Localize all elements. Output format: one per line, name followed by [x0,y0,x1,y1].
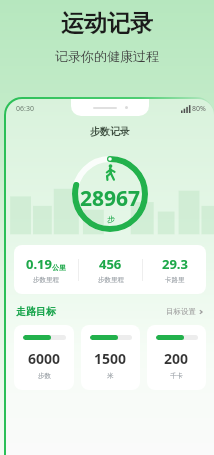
staticText: 06:30 [16,104,34,114]
staticText: 运动记录 [61,9,153,38]
button[interactable]: 目标设置 [166,307,204,316]
staticText: 0.19 [26,255,52,273]
staticText: 步数 [38,372,51,380]
staticText: 米 [107,372,114,380]
staticText: 200 [164,349,189,368]
staticText: 80% [192,104,206,114]
button[interactable]: 29.3 [143,251,206,288]
staticText: 步数里程 [33,276,59,284]
staticText: 公里 [52,263,66,272]
staticText: 456 [99,255,122,273]
button[interactable]: 1500 [81,325,140,390]
button[interactable]: 0.19 [14,251,78,288]
staticText: 记录你的健康过程 [55,48,159,64]
staticText: 1500 [94,349,127,368]
staticText: 走路目标 [16,305,56,318]
staticText: 卡路里 [165,276,185,284]
button[interactable]: 200 [147,325,206,390]
staticText: 28967 [80,184,141,213]
staticText: 千卡 [170,372,183,380]
staticText: 6000 [28,349,61,368]
button[interactable]: 456 [79,251,142,288]
staticText: 目标设置 [166,307,196,316]
staticText: 步数里程 [98,276,124,284]
staticText: 步数记录 [90,125,130,138]
staticText: 29.3 [162,255,188,273]
staticText: 步 [107,214,115,224]
button[interactable]: 6000 [14,325,74,390]
